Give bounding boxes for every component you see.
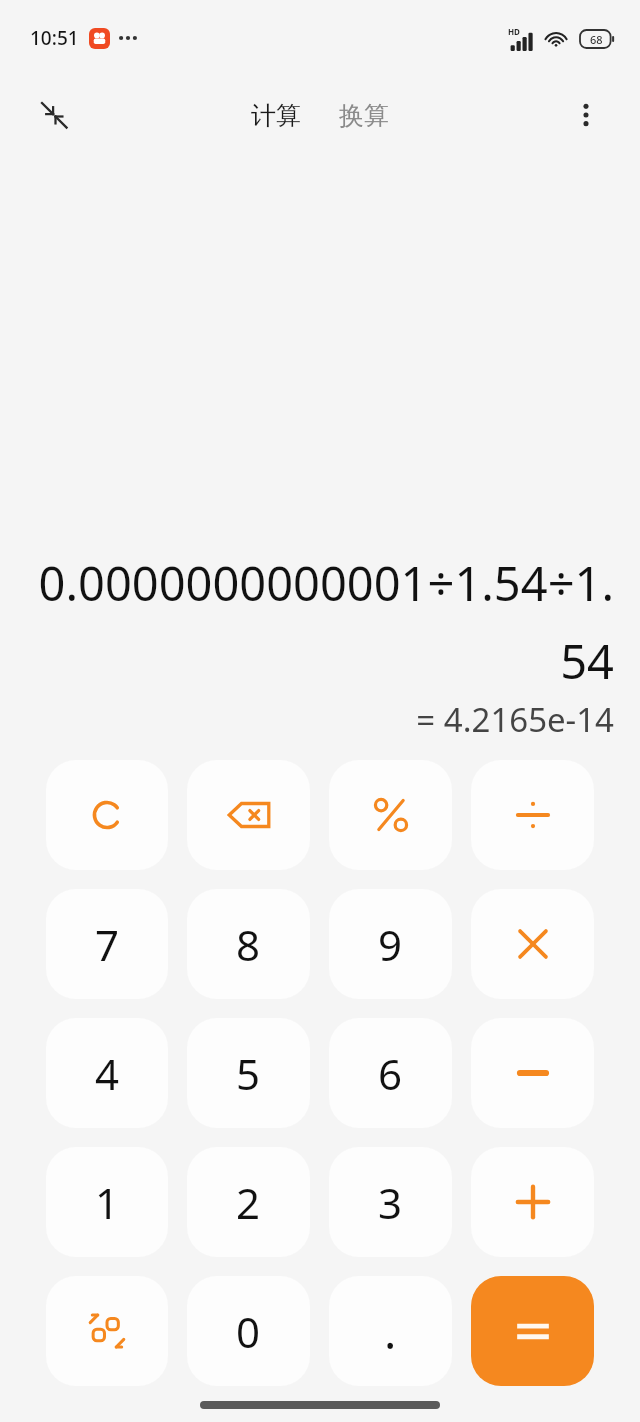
staticText: 换算 <box>339 100 389 131</box>
button[interactable]: 7 <box>46 889 168 999</box>
button[interactable]: 9 <box>329 889 452 999</box>
staticText: = 4.2165e-14 <box>416 697 614 742</box>
staticText: 10:51 <box>30 25 79 51</box>
staticText: HD <box>508 26 520 37</box>
button[interactable]: 8 <box>187 889 310 999</box>
staticText: 2 <box>236 1174 261 1231</box>
button[interactable]: 换算 <box>331 94 397 137</box>
staticText: 7 <box>95 916 120 973</box>
button[interactable]: Collapse <box>30 91 78 139</box>
button[interactable]: Plus <box>471 1147 594 1257</box>
staticText: 计算 <box>251 100 301 131</box>
button[interactable]: More options <box>562 91 610 139</box>
staticText: . <box>384 1300 397 1363</box>
button[interactable]: 4 <box>46 1018 168 1128</box>
staticText: 1 <box>95 1174 120 1231</box>
button[interactable]: Multiply <box>471 889 594 999</box>
staticText: 6 <box>378 1045 403 1102</box>
button[interactable]: Clear <box>46 760 168 870</box>
button[interactable]: Divide <box>471 760 594 870</box>
staticText: 0 <box>236 1303 261 1360</box>
staticText: 8 <box>236 916 261 973</box>
staticText: 5 <box>236 1045 261 1102</box>
button[interactable]: . <box>329 1276 452 1386</box>
button[interactable]: 2 <box>187 1147 310 1257</box>
staticText: 9 <box>378 916 403 973</box>
staticText: 68 <box>590 32 603 47</box>
button[interactable]: Percent <box>329 760 452 870</box>
button[interactable]: 3 <box>329 1147 452 1257</box>
button[interactable]: Equals <box>471 1276 594 1386</box>
staticText: 0.0000000000001÷1.54÷1.54 <box>28 551 614 693</box>
button[interactable]: 计算 <box>243 94 309 137</box>
button[interactable]: 6 <box>329 1018 452 1128</box>
button[interactable]: 5 <box>187 1018 310 1128</box>
button[interactable]: Backspace <box>187 760 310 870</box>
staticText: 3 <box>378 1174 403 1231</box>
button[interactable]: Scientific <box>46 1276 168 1386</box>
button[interactable]: Minus <box>471 1018 594 1128</box>
button[interactable]: 0 <box>187 1276 310 1386</box>
button[interactable]: 1 <box>46 1147 168 1257</box>
staticText: 4 <box>95 1045 120 1102</box>
